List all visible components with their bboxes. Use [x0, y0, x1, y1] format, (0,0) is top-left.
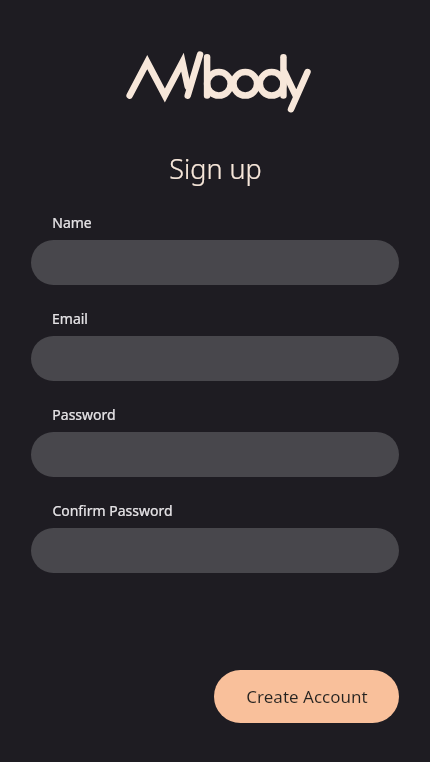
staticText: Confirm Password: [52, 501, 173, 520]
button[interactable]: Name: [31, 213, 399, 285]
button[interactable]: Create Account: [214, 670, 399, 723]
other: Mbody logo: [127, 46, 303, 108]
button[interactable]: Password: [31, 405, 399, 477]
button[interactable]: Confirm Password: [31, 501, 399, 573]
staticText: Sign up: [169, 150, 262, 187]
staticText: Password: [52, 405, 116, 424]
staticText: Name: [52, 213, 92, 232]
staticText: Email: [52, 309, 88, 328]
button[interactable]: Email: [31, 309, 399, 381]
staticText: Create Account: [246, 685, 368, 708]
